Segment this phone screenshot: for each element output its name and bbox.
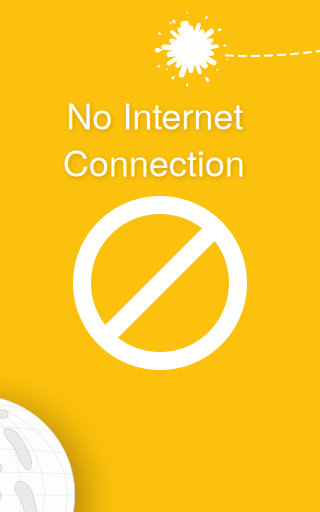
staticText: No Internet <box>66 88 243 140</box>
staticText: Connection <box>63 135 245 187</box>
